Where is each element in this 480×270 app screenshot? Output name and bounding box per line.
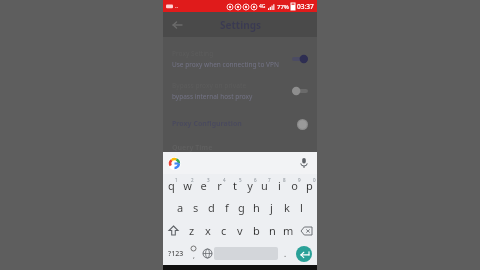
button[interactable]: n <box>264 219 280 242</box>
staticText: 03:37 <box>297 2 314 11</box>
staticText: . <box>284 248 287 259</box>
staticText: Settings <box>220 18 261 32</box>
button[interactable]: o <box>287 174 302 196</box>
staticText: t <box>233 178 237 193</box>
button[interactable]: f <box>219 196 234 219</box>
staticText: 5 <box>239 177 242 183</box>
button[interactable]: Enter <box>296 246 312 262</box>
staticText: 8 <box>283 177 286 183</box>
staticText: 9 <box>298 177 301 183</box>
staticText: r <box>217 178 222 193</box>
button[interactable]: Comma <box>187 244 200 263</box>
button[interactable]: Back <box>168 16 186 34</box>
staticText: u <box>261 178 268 193</box>
button[interactable]: c <box>216 219 232 242</box>
staticText: 2 <box>191 177 194 183</box>
staticText: 4G <box>259 3 266 10</box>
button[interactable]: w <box>179 174 195 196</box>
staticText: 6 <box>254 177 257 183</box>
staticText: l <box>300 200 303 215</box>
staticText: v <box>237 223 243 238</box>
staticText: n <box>269 223 276 238</box>
button[interactable]: Google <box>167 156 182 171</box>
button[interactable]: y <box>242 174 257 196</box>
staticText: f <box>225 200 229 215</box>
button[interactable]: z <box>184 219 200 242</box>
button[interactable]: j <box>264 196 279 219</box>
staticText: e <box>200 178 207 193</box>
button[interactable]: m <box>280 219 296 242</box>
button[interactable]: Bypass proxy on private <box>163 75 317 107</box>
staticText: Proxy Configuration <box>172 119 242 129</box>
button[interactable]: t <box>227 174 242 196</box>
button[interactable]: Emoji <box>200 244 214 263</box>
button[interactable]: b <box>248 219 264 242</box>
staticText: w <box>183 178 192 193</box>
button[interactable]: Toggle off <box>292 86 308 96</box>
staticText: m <box>283 223 294 238</box>
staticText: b <box>253 223 260 238</box>
staticText: p <box>306 178 313 193</box>
staticText: g <box>238 200 245 215</box>
staticText: , <box>193 251 195 261</box>
staticText: s <box>193 200 199 215</box>
staticText: 0 <box>313 177 316 183</box>
staticText: d <box>208 200 215 215</box>
button[interactable]: e <box>195 174 211 196</box>
button[interactable]: u <box>257 174 272 196</box>
button[interactable]: h <box>249 196 264 219</box>
staticText: i <box>278 178 281 193</box>
button[interactable]: s <box>188 196 204 219</box>
staticText: ?123 <box>168 249 184 259</box>
staticText: h <box>253 200 260 215</box>
button[interactable]: Backspace <box>296 219 317 242</box>
button[interactable]: v <box>232 219 248 242</box>
button[interactable]: . <box>278 244 292 263</box>
staticText: x <box>205 223 211 238</box>
button[interactable]: p <box>302 174 317 196</box>
button[interactable]: a <box>172 196 188 219</box>
staticText: j <box>270 200 273 215</box>
staticText: 77% <box>277 3 289 11</box>
staticText: 1 <box>175 177 178 183</box>
button[interactable]: d <box>204 196 219 219</box>
button[interactable]: k <box>279 196 294 219</box>
button[interactable]: Voice input <box>297 156 311 170</box>
button[interactable]: Toggle on <box>292 54 308 64</box>
staticText: 7 <box>268 177 271 183</box>
button[interactable]: i <box>272 174 287 196</box>
staticText: o <box>291 178 298 193</box>
button[interactable]: ?123 <box>165 244 187 263</box>
staticText: Use proxy when connecting to VPN <box>172 60 279 69</box>
button[interactable]: l <box>294 196 309 219</box>
button[interactable]: Shift <box>163 219 184 242</box>
button[interactable]: g <box>234 196 249 219</box>
button[interactable]: Proxy Setting <box>163 43 317 75</box>
staticText: z <box>189 223 195 238</box>
button[interactable]: q <box>163 174 179 196</box>
staticText: bypass internal host proxy <box>172 92 253 101</box>
staticText: y <box>247 178 253 193</box>
button[interactable]: x <box>200 219 216 242</box>
staticText: k <box>284 200 290 215</box>
staticText: a <box>177 200 184 215</box>
staticText: c <box>221 223 227 238</box>
button[interactable]: Proxy Configuration <box>163 111 317 137</box>
staticText: ·· <box>175 3 179 11</box>
button[interactable]: r <box>211 174 227 196</box>
staticText: 3 <box>207 177 210 183</box>
staticText: q <box>168 178 175 193</box>
staticText: 4 <box>223 177 226 183</box>
